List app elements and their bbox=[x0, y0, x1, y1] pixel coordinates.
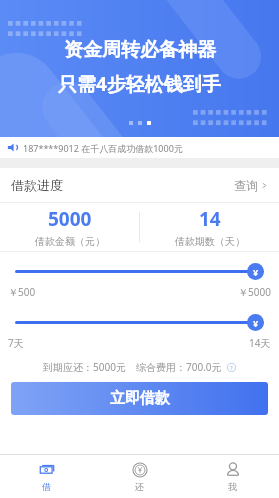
staticText: 借款金额（元） bbox=[35, 235, 105, 248]
staticText: 5000 bbox=[48, 206, 92, 232]
button[interactable]: Slider bbox=[15, 313, 264, 331]
button[interactable]: Fee info bbox=[227, 363, 236, 372]
button[interactable]: 我 bbox=[186, 455, 279, 498]
staticText: 资金周转必备神器 bbox=[64, 38, 216, 62]
button[interactable]: 借 bbox=[0, 455, 93, 498]
staticText: ￥500 bbox=[8, 285, 36, 299]
staticText: 14天 bbox=[249, 336, 271, 350]
staticText: 借 bbox=[42, 481, 51, 492]
button[interactable]: 还 bbox=[93, 455, 186, 498]
button[interactable]: Slider bbox=[15, 262, 264, 280]
staticText: 7天 bbox=[8, 336, 24, 350]
button[interactable]: 借款进度 bbox=[0, 168, 279, 202]
button[interactable]: 立即借款 bbox=[11, 382, 268, 415]
staticText: ? bbox=[230, 364, 233, 372]
staticText: 综合费用：700.0元 bbox=[136, 360, 222, 374]
staticText: 查询 bbox=[234, 178, 258, 193]
staticText: 187****9012 在千八百成功借款1000元 bbox=[23, 142, 183, 154]
staticText: 只需4步轻松钱到手 bbox=[58, 71, 221, 97]
staticText: 14 bbox=[199, 206, 221, 232]
staticText: 还 bbox=[135, 481, 144, 492]
staticText: 我 bbox=[228, 481, 237, 492]
staticText: ¥ bbox=[253, 317, 259, 329]
staticText: 立即借款 bbox=[110, 389, 170, 408]
staticText: 到期应还：5000元 bbox=[43, 360, 126, 374]
staticText: 借款期数（天） bbox=[175, 235, 245, 248]
staticText: ¥ bbox=[253, 266, 259, 278]
staticText: 借款进度 bbox=[11, 177, 63, 193]
staticText: ￥5000 bbox=[238, 285, 271, 299]
